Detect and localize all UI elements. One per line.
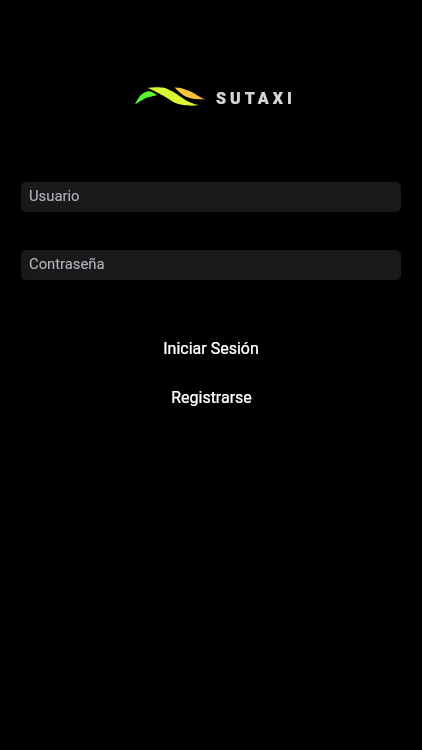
staticText: SUTAXI — [216, 89, 296, 108]
staticText: Iniciar Sesión — [163, 339, 259, 358]
button[interactable]: Usuario — [21, 182, 401, 212]
other: SUTAXI logo — [133, 87, 207, 107]
button[interactable]: Iniciar Sesión — [0, 334, 422, 362]
staticText: Contraseña — [29, 255, 105, 272]
staticText: Registrarse — [171, 388, 252, 407]
button[interactable]: Registrarse — [0, 383, 422, 411]
staticText: Usuario — [29, 187, 80, 204]
button[interactable]: Contraseña — [21, 250, 401, 280]
